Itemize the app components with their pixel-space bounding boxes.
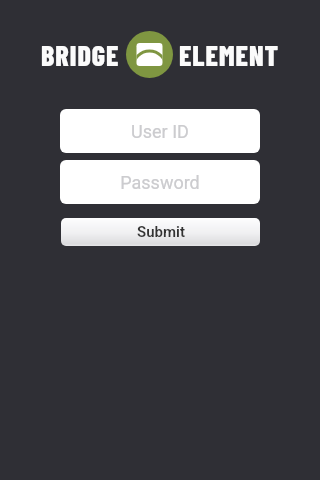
staticText: Submit	[137, 223, 185, 241]
button[interactable]: Submit	[61, 218, 260, 246]
other: Bridge Element logo	[126, 31, 173, 78]
button[interactable]: User ID	[60, 109, 260, 153]
staticText: BRIDGE	[41, 38, 120, 72]
button[interactable]: Password	[60, 160, 260, 204]
staticText: User ID	[131, 121, 189, 142]
staticText: Password	[120, 172, 200, 193]
staticText: ELEMENT	[179, 38, 280, 72]
